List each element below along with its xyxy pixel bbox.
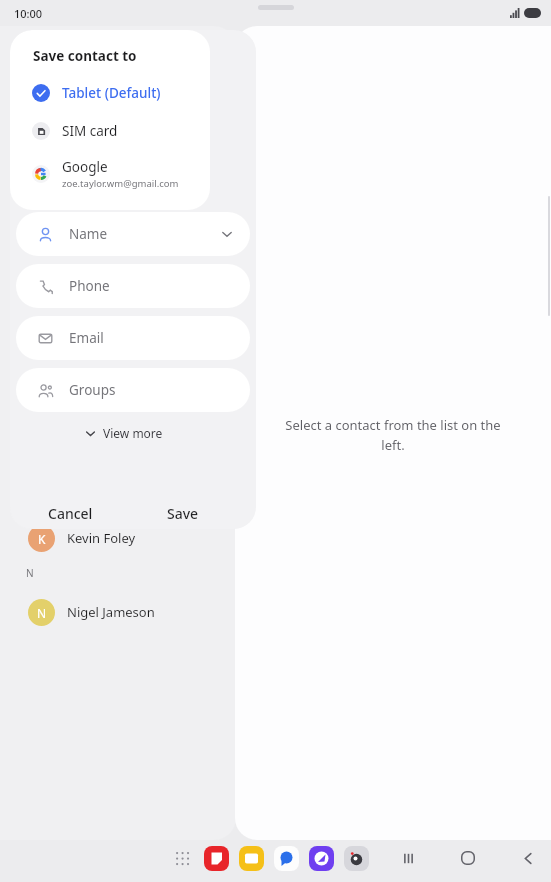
button[interactable]: Save — [167, 496, 199, 529]
staticText: N — [26, 566, 34, 580]
staticText: Tablet (Default) — [62, 84, 161, 102]
button[interactable]: SIM card — [10, 114, 210, 148]
staticText: Email — [69, 329, 104, 347]
button[interactable]: Name — [16, 212, 250, 256]
button[interactable]: K — [0, 518, 236, 558]
button[interactable]: View more — [84, 420, 163, 446]
button[interactable]: Cancel — [48, 496, 93, 529]
button[interactable]: Recents — [395, 845, 421, 871]
staticText: K — [38, 531, 46, 547]
button[interactable]: Google — [10, 152, 210, 196]
staticText: 10:00 — [14, 6, 43, 21]
staticText: Groups — [69, 381, 116, 399]
staticText: Kevin Foley — [67, 529, 136, 547]
staticText: Cancel — [48, 504, 93, 523]
button[interactable]: All apps — [170, 846, 194, 870]
button[interactable]: App — [274, 846, 299, 871]
button[interactable]: Create contact — [176, 154, 232, 210]
staticText: N — [37, 605, 47, 621]
staticText: zoe.taylor.wm@gmail.com — [62, 177, 179, 190]
button[interactable]: Home — [455, 845, 481, 871]
staticText: Nigel Jameson — [67, 603, 155, 621]
button[interactable]: App — [204, 846, 229, 871]
button[interactable]: Back — [515, 845, 541, 871]
button[interactable]: Email — [16, 316, 250, 360]
button[interactable]: Groups — [16, 368, 250, 412]
staticText: Google — [62, 158, 108, 176]
staticText: View more — [103, 425, 163, 441]
button[interactable]: N — [0, 592, 236, 632]
staticText: Select a contact from the list on the le… — [285, 416, 501, 454]
button[interactable]: App — [239, 846, 264, 871]
staticText: SIM card — [62, 122, 118, 140]
staticText: Name — [69, 225, 108, 243]
staticText: Save — [167, 504, 199, 523]
staticText: Save contact to — [33, 47, 137, 65]
button[interactable]: App — [344, 846, 369, 871]
button[interactable]: Tablet (Default) — [10, 76, 210, 110]
staticText: Phone — [69, 277, 110, 295]
button[interactable]: App — [309, 846, 334, 871]
button[interactable]: Phone — [16, 264, 250, 308]
